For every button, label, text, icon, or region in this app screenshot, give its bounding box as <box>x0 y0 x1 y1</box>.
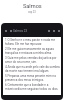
staticText: cap 23 <box>28 11 36 14</box>
staticText: 1 O Senhor e o meu pastor e nada me falt… <box>5 38 60 46</box>
button[interactable]: Menu <box>8 28 13 33</box>
button[interactable]: Back <box>3 28 8 33</box>
staticText: Salmos <box>23 3 42 10</box>
staticText: 3 Guia-me pelas veredas da justica por a… <box>5 56 60 64</box>
staticText: 4 Ainda que eu ande pelo vale da sombra … <box>5 65 60 73</box>
button[interactable]: Bookmark <box>51 28 56 33</box>
staticText: 5 Preparas uma mesa perante mim na prese… <box>5 74 60 82</box>
staticText: 6 Certamente que a bondade e a misericor… <box>5 83 60 91</box>
staticText: Salmos 23 <box>13 29 28 33</box>
staticText: 2 Ele me guia mansamente as aguas tranqu… <box>5 47 60 55</box>
button[interactable]: More options <box>56 28 61 33</box>
button[interactable]: Search <box>46 28 51 33</box>
